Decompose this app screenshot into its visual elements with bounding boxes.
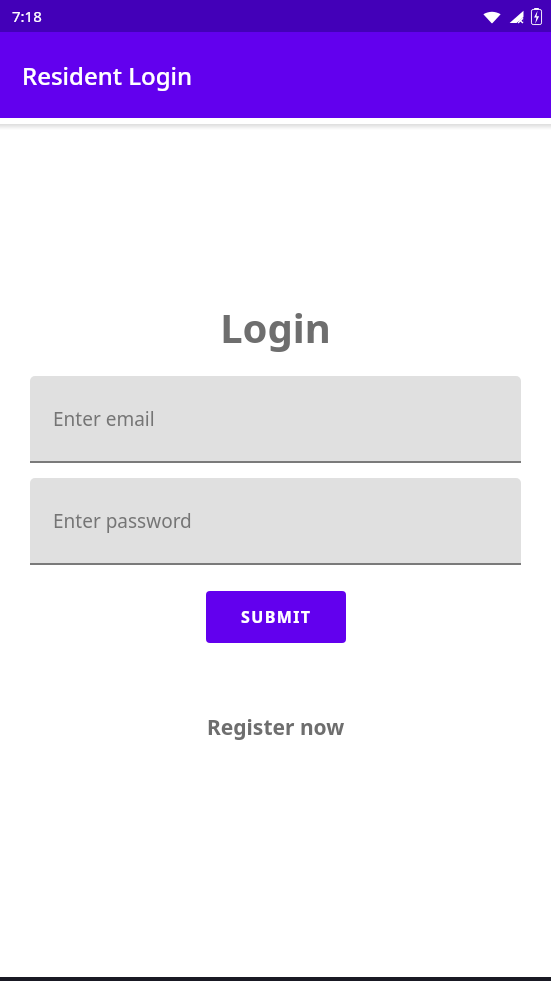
staticText: Resident Login [22, 59, 193, 92]
button[interactable]: Enter email [30, 376, 521, 463]
staticText: Login [220, 300, 331, 354]
staticText: SUBMIT [241, 606, 312, 628]
staticText: Register now [207, 713, 345, 742]
button[interactable]: SUBMIT [206, 591, 346, 643]
button[interactable]: Register now [195, 707, 357, 748]
staticText: Enter password [53, 508, 192, 534]
staticText: Enter email [53, 406, 155, 432]
staticText: 7:18 [12, 6, 42, 26]
button[interactable]: Enter password [30, 478, 521, 565]
